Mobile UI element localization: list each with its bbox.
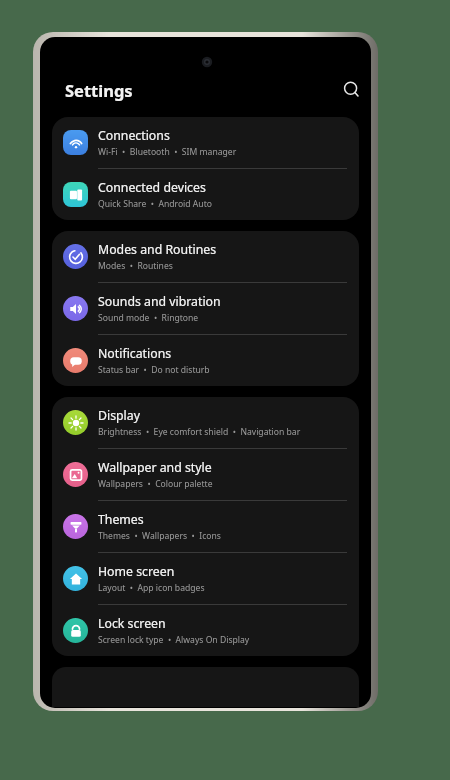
staticText: Screen lock type • Always On Display — [98, 634, 250, 646]
staticText: Themes • Wallpapers • Icons — [98, 530, 221, 542]
staticText: Modes and Routines — [98, 241, 217, 258]
staticText: Settings — [65, 79, 133, 101]
button[interactable]: Display — [52, 397, 359, 448]
button[interactable]: Themes — [52, 501, 359, 552]
button[interactable]: Sounds and vibration — [52, 283, 359, 334]
button[interactable]: Search — [333, 71, 371, 109]
staticText: Connected devices — [98, 179, 206, 196]
staticText: Sounds and vibration — [98, 293, 221, 310]
button[interactable]: Modes and Routines — [52, 231, 359, 282]
staticText: Themes — [98, 511, 144, 528]
button[interactable]: Notifications — [52, 335, 359, 386]
button[interactable]: Connected devices — [52, 169, 359, 220]
button[interactable]: Home screen — [52, 553, 359, 604]
button[interactable]: Lock screen — [52, 605, 359, 656]
staticText: Brightness • Eye comfort shield • Naviga… — [98, 426, 301, 438]
staticText: Sound mode • Ringtone — [98, 312, 199, 324]
staticText: Connections — [98, 127, 170, 144]
button[interactable]: Connections — [52, 117, 359, 168]
staticText: Quick Share • Android Auto — [98, 198, 212, 210]
staticText: Wi-Fi • Bluetooth • SIM manager — [98, 146, 237, 158]
staticText: Lock screen — [98, 615, 166, 632]
staticText: Layout • App icon badges — [98, 582, 205, 594]
staticText: Modes • Routines — [98, 260, 173, 272]
staticText: Display — [98, 407, 140, 424]
button[interactable]: Wallpaper and style — [52, 449, 359, 500]
staticText: Notifications — [98, 345, 172, 362]
staticText: Wallpaper and style — [98, 459, 212, 476]
staticText: Status bar • Do not disturb — [98, 364, 210, 376]
staticText: Wallpapers • Colour palette — [98, 478, 213, 490]
staticText: Home screen — [98, 563, 175, 580]
